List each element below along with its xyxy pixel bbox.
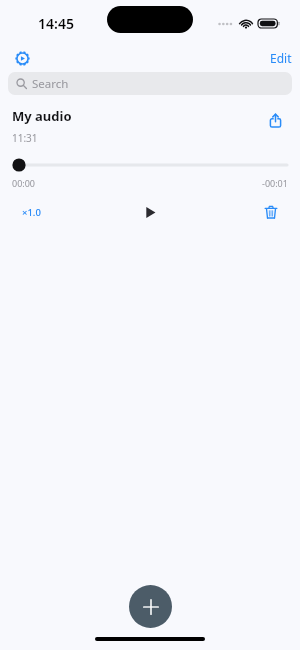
staticText: 00:00 (12, 177, 36, 189)
staticText: 14:45 (38, 14, 74, 33)
button[interactable]: ×1.0 (18, 203, 45, 222)
button[interactable]: Play (138, 200, 162, 224)
button[interactable]: Playback settings (8, 44, 36, 72)
staticText: ×1.0 (22, 206, 41, 219)
button[interactable]: Edit (262, 46, 300, 70)
button[interactable]: New recording (129, 585, 172, 628)
button[interactable]: Search (8, 72, 292, 95)
button[interactable]: Playback position (12, 157, 288, 173)
staticText: Search (32, 76, 69, 92)
staticText: 11:31 (12, 131, 38, 145)
button[interactable]: Share (262, 107, 288, 133)
button[interactable]: Delete (260, 201, 282, 223)
staticText: -00:01 (262, 177, 288, 189)
staticText: Edit (270, 50, 292, 66)
staticText: My audio (12, 107, 72, 125)
